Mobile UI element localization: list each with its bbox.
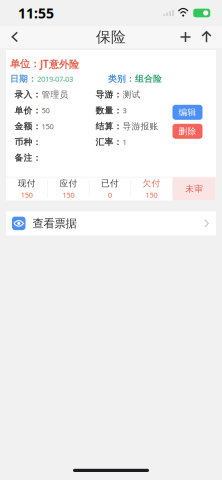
staticText: 金额：: [14, 121, 41, 132]
staticText: 组合险: [135, 73, 162, 84]
staticText: 150: [41, 121, 53, 131]
staticText: 3: [122, 105, 126, 115]
button[interactable]: 删除: [172, 124, 202, 139]
staticText: 150: [146, 190, 158, 200]
staticText: 现付: [18, 178, 36, 189]
button[interactable]: Back: [0, 26, 30, 48]
button[interactable]: 编辑: [172, 105, 202, 120]
staticText: 已付: [101, 178, 119, 189]
staticText: 结算：: [95, 121, 122, 132]
staticText: 编辑: [178, 107, 196, 118]
staticText: 保险: [96, 28, 126, 46]
staticText: 日期：: [10, 73, 37, 84]
staticText: 汇率：: [95, 137, 122, 147]
staticText: 管理员: [41, 89, 68, 100]
staticText: 查看票据: [32, 216, 76, 231]
staticText: 未审: [185, 183, 203, 194]
staticText: 导游报账: [122, 121, 158, 132]
staticText: 录入：: [14, 89, 41, 100]
staticText: 币种：: [14, 137, 41, 147]
staticText: 单位：: [10, 57, 40, 70]
staticText: 应付: [59, 178, 77, 189]
button[interactable]: 查看票据: [0, 211, 222, 235]
staticText: 50: [41, 105, 49, 115]
staticText: 0: [108, 190, 112, 200]
button[interactable]: Share: [196, 26, 217, 48]
staticText: 150: [62, 190, 74, 200]
staticText: 删除: [178, 126, 196, 137]
staticText: 单价：: [14, 105, 41, 116]
staticText: 150: [21, 190, 33, 200]
staticText: 备注：: [14, 152, 41, 163]
staticText: 导游：: [95, 89, 122, 100]
staticText: 数量：: [95, 105, 122, 116]
staticText: 类别：: [108, 73, 135, 84]
staticText: 1: [122, 137, 126, 147]
staticText: JT意外险: [40, 57, 79, 71]
staticText: 测试: [122, 89, 140, 100]
staticText: 2019-07-03: [37, 74, 73, 84]
staticText: 11:55: [18, 3, 54, 23]
button[interactable]: Add: [175, 26, 196, 48]
staticText: 欠付: [143, 178, 161, 189]
